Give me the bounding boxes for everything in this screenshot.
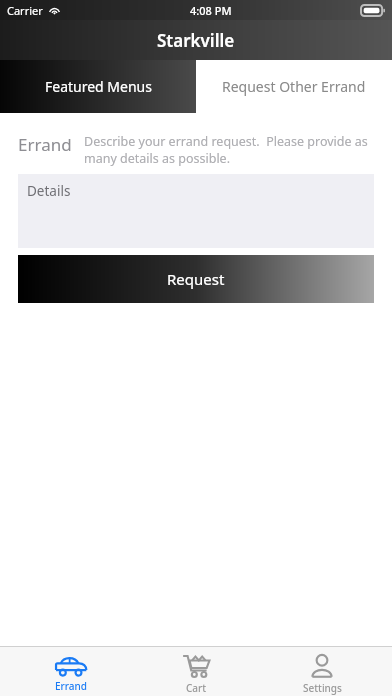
button[interactable]: Featured Menus xyxy=(0,60,196,113)
staticText: Carrier xyxy=(7,3,43,18)
staticText: Request xyxy=(167,269,225,289)
staticText: Request Other Errand xyxy=(222,77,366,96)
button[interactable]: Details xyxy=(18,174,374,248)
button[interactable]: Request Other Errand xyxy=(196,60,392,113)
staticText: Settings xyxy=(303,681,342,695)
staticText: 4:08 PM xyxy=(190,3,232,18)
staticText: Errand xyxy=(18,133,72,156)
button[interactable]: Request xyxy=(18,255,374,303)
staticText: Describe your errand request. Please pro… xyxy=(84,133,374,166)
staticText: Featured Menus xyxy=(45,77,152,96)
button[interactable]: Settings xyxy=(267,647,377,696)
staticText: Errand xyxy=(55,679,88,693)
button[interactable]: Cart xyxy=(141,647,251,696)
staticText: Details xyxy=(27,182,71,200)
button[interactable]: Errand xyxy=(16,647,126,696)
staticText: Cart xyxy=(186,681,207,695)
staticText: Starkville xyxy=(157,29,235,52)
